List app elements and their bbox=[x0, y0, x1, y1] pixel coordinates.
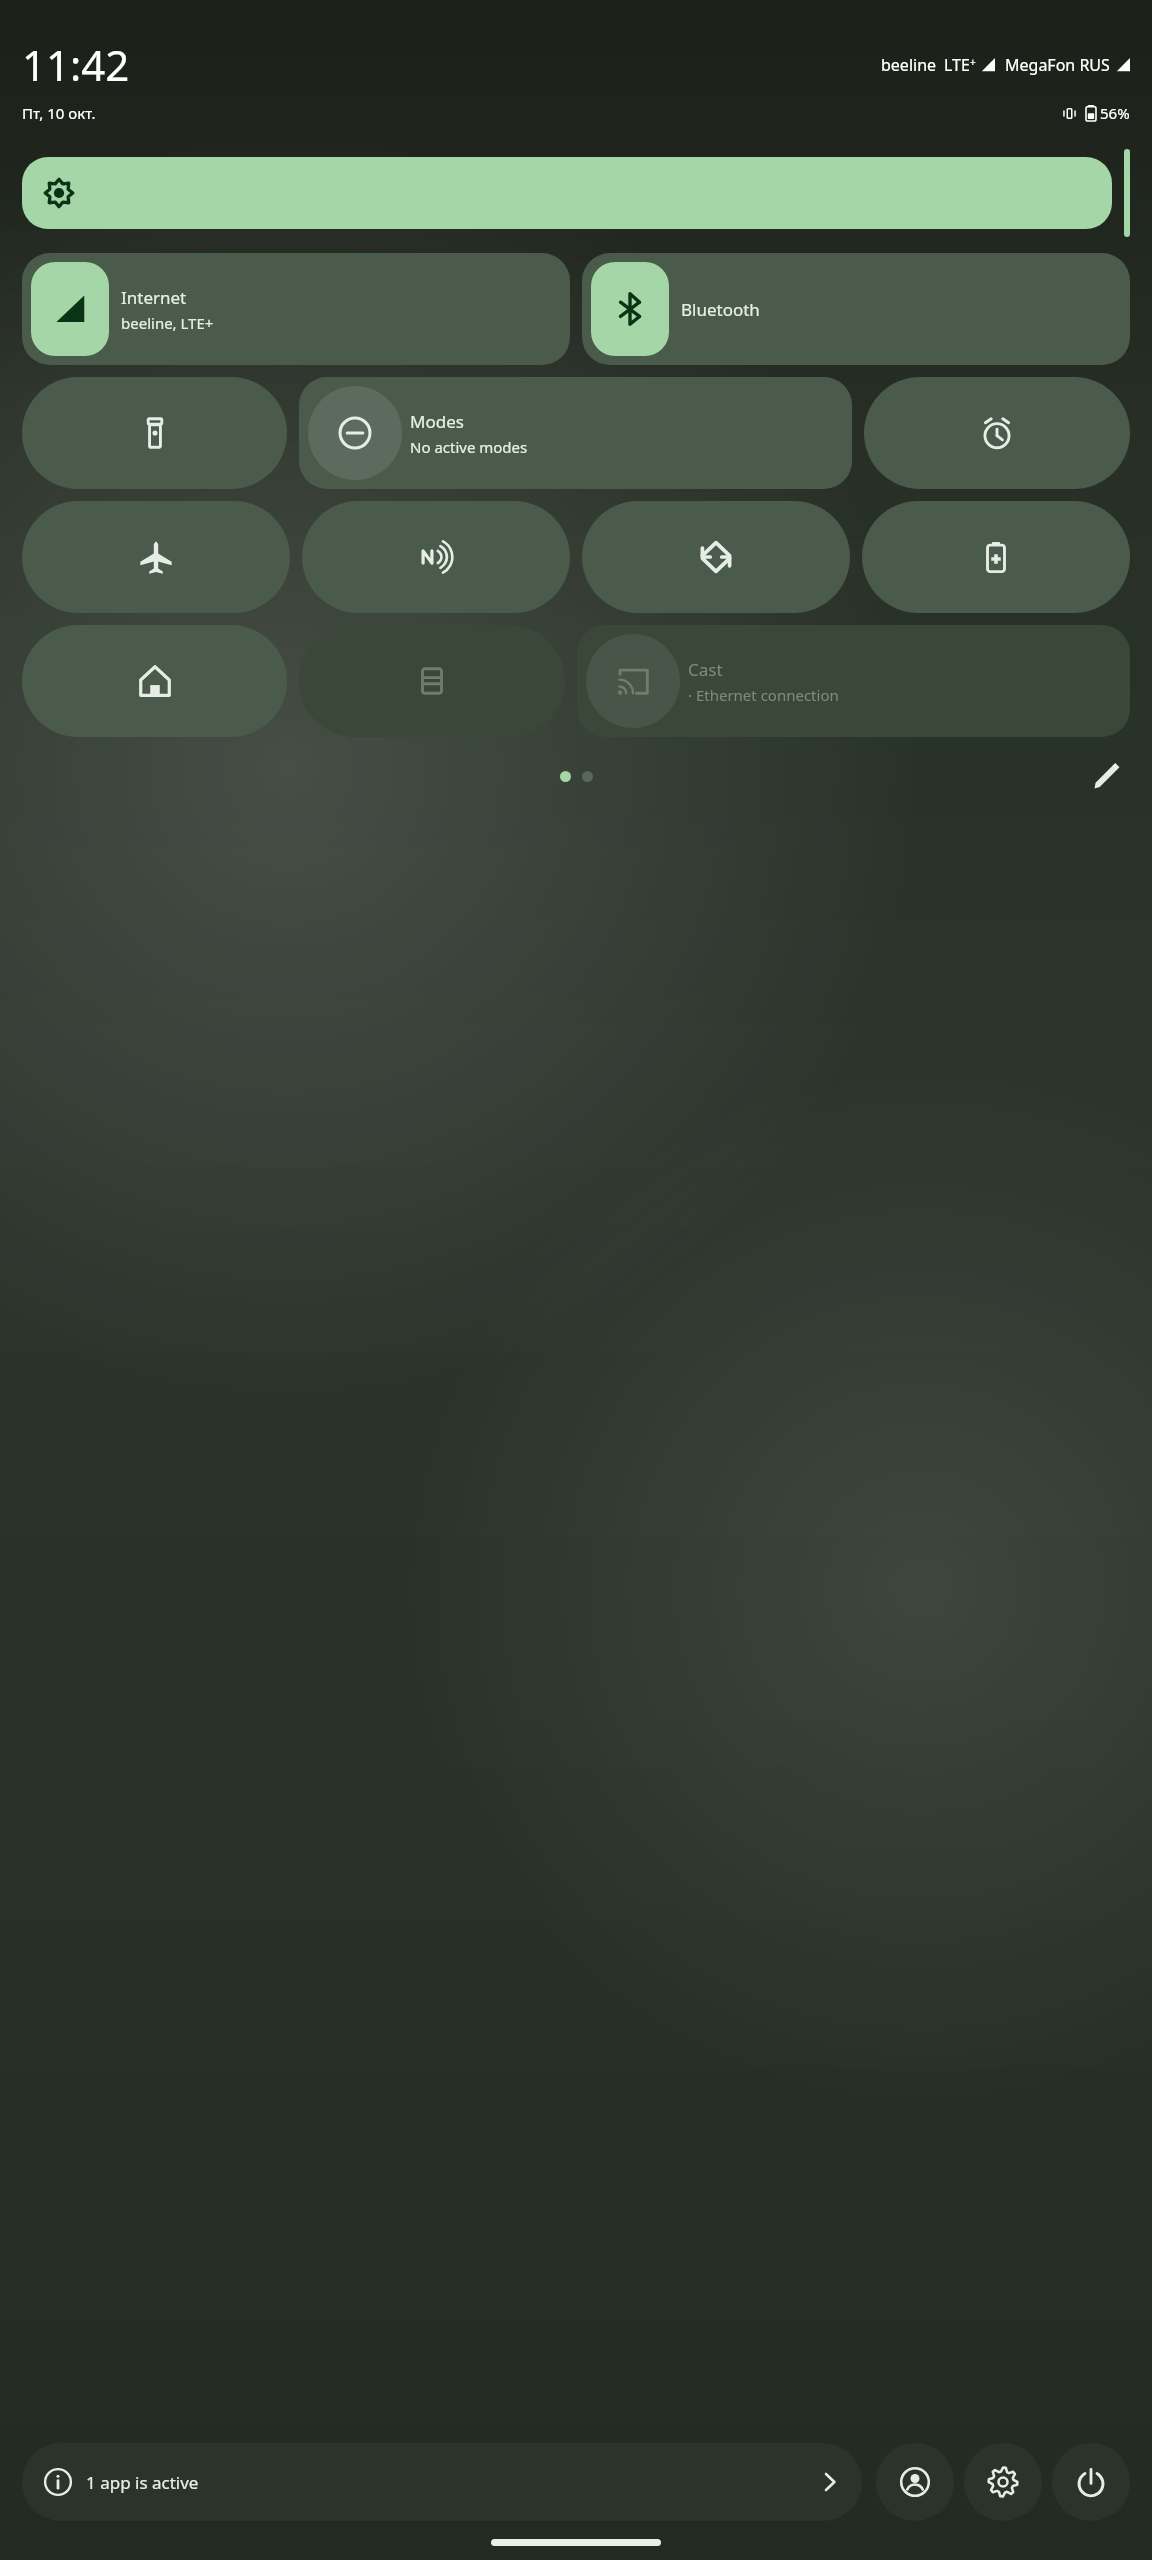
button[interactable]: NFC bbox=[302, 501, 570, 613]
button[interactable]: Home bbox=[22, 625, 287, 737]
staticText: No active modes bbox=[410, 437, 528, 457]
button[interactable]: Alarm bbox=[864, 377, 1130, 489]
staticText: beeline bbox=[881, 54, 937, 76]
staticText: 1 app is active bbox=[86, 2471, 199, 2494]
button[interactable]: Profile bbox=[876, 2443, 954, 2521]
button[interactable]: Battery saver bbox=[862, 501, 1130, 613]
staticText: Bluetooth bbox=[681, 298, 760, 321]
staticText: 11:42 bbox=[22, 36, 130, 93]
button[interactable]: Auto brightness bbox=[1124, 149, 1130, 237]
button[interactable]: Modes bbox=[299, 377, 852, 489]
staticText: 56% bbox=[1100, 103, 1130, 123]
staticText: Пт, 10 окт. bbox=[22, 103, 96, 123]
button[interactable]: Auto rotate bbox=[582, 501, 850, 613]
staticText: Internet bbox=[121, 286, 187, 309]
button[interactable]: Edit tiles bbox=[1084, 753, 1130, 799]
staticText: Cast bbox=[688, 658, 723, 681]
button[interactable]: Cast bbox=[577, 625, 1130, 737]
staticText: LTE bbox=[944, 54, 970, 76]
staticText: · Ethernet connection bbox=[688, 685, 839, 705]
button[interactable]: Internet bbox=[22, 253, 570, 365]
button[interactable]: Bluetooth bbox=[582, 253, 1130, 365]
button[interactable]: Wallet bbox=[299, 625, 565, 737]
button[interactable]: Settings bbox=[964, 2443, 1042, 2521]
button[interactable]: Airplane mode bbox=[22, 501, 290, 613]
button[interactable]: Flashlight bbox=[22, 377, 287, 489]
staticText: MegaFon RUS bbox=[1005, 54, 1110, 76]
button[interactable]: 1 app is active bbox=[22, 2443, 862, 2521]
button[interactable]: Brightness bbox=[22, 157, 1112, 229]
staticText: Modes bbox=[410, 410, 464, 433]
staticText: + bbox=[970, 55, 976, 69]
button[interactable]: Power bbox=[1052, 2443, 1130, 2521]
staticText: beeline, LTE+ bbox=[121, 313, 214, 333]
